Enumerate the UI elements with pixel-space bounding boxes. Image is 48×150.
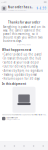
staticText: $ 4.99: [37, 7, 47, 10]
button[interactable]: Toolbar action: [29, 142, 38, 150]
staticText: Thanks for your order: [8, 21, 40, 24]
button[interactable]: Toolbar action: [0, 142, 10, 150]
button[interactable]: Toolbar action: [19, 142, 29, 150]
staticText: help@example.com: [6, 119, 19, 120]
staticText: Customer Care: [6, 117, 18, 118]
staticText: Your order has shipped: [8, 5, 34, 9]
staticText: Need a hand? Reply to this message and o…: [2, 114, 46, 116]
button[interactable]: Your order has shipped: [0, 4, 48, 13]
staticText: Customer Care · Today 9:41: [8, 9, 27, 11]
staticText: In transit through the hub: [3, 57, 41, 60]
staticText: Arrives by 8pm, no signature: [3, 69, 43, 72]
staticText: Order # 4821-0093: [17, 44, 31, 46]
staticText: Sorted at your local depot: [3, 61, 39, 64]
staticText: Tracking updates by email: [3, 73, 37, 76]
staticText: Returns open for 30 days: [3, 77, 39, 80]
button[interactable]: Toolbar action: [10, 142, 19, 150]
staticText: Out for delivery Thursday: [3, 65, 37, 68]
button[interactable]: Toolbar action: [38, 142, 48, 150]
staticText: Carrier picked up the parcel: [3, 53, 42, 56]
staticText: What happens next: [2, 48, 31, 52]
staticText: Everything is packed and on its way. The…: [3, 25, 45, 43]
staticText: In this shipment: [2, 82, 26, 86]
